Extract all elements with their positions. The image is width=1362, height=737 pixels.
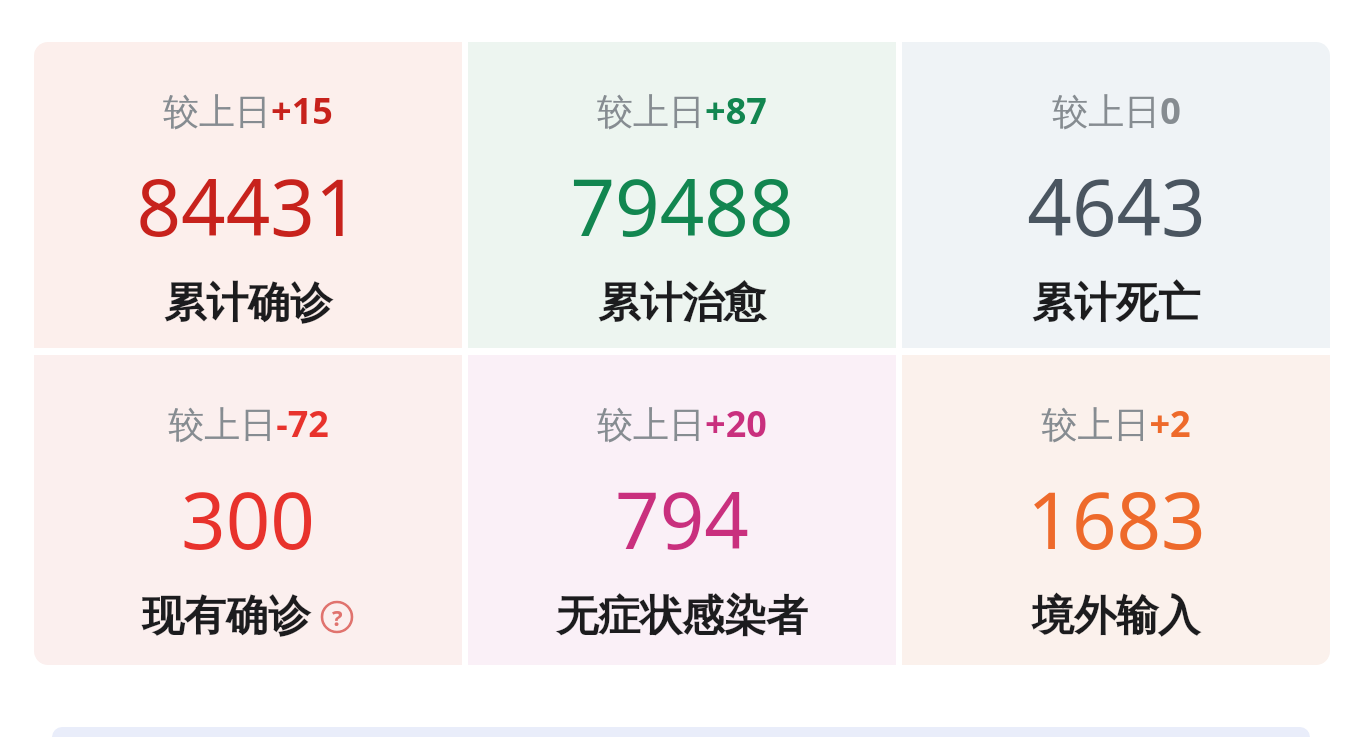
staticText: 较上日+20 [597, 399, 767, 448]
staticText: 较上日-72 [168, 399, 329, 448]
button[interactable]: 较上日0 [902, 42, 1330, 348]
staticText: 84431 [136, 153, 360, 259]
button[interactable]: 较上日-72 [34, 355, 462, 665]
staticText: 无症状感染者 [556, 590, 808, 643]
staticText: 累计治愈 [598, 277, 766, 330]
staticText: 较上日+15 [163, 86, 333, 135]
staticText: 境外输入 [1032, 590, 1200, 643]
button[interactable]: 较上日+2 [902, 355, 1330, 665]
staticText: 79488 [570, 153, 794, 259]
staticText: 4643 [1027, 153, 1206, 259]
button[interactable]: 说明 [320, 600, 354, 634]
button[interactable]: 较上日+20 [468, 355, 896, 665]
staticText: 较上日+87 [597, 86, 767, 135]
button[interactable]: 较上日+15 [34, 42, 462, 348]
staticText: 1683 [1027, 466, 1206, 572]
staticText: 累计死亡 [1032, 277, 1200, 330]
staticText: 300 [181, 466, 315, 572]
staticText: 现有确诊 [142, 590, 310, 643]
staticText: ? [332, 602, 343, 632]
staticText: 794 [615, 466, 749, 572]
button[interactable]: 较上日+87 [468, 42, 896, 348]
staticText: 累计确诊 [164, 277, 332, 330]
staticText: 较上日0 [1052, 86, 1181, 135]
staticText: 较上日+2 [1041, 399, 1191, 448]
